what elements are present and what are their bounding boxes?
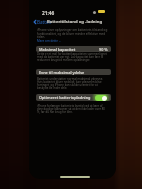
staticText: Optimeret batteriopladning	[39, 95, 91, 100]
button[interactable]: Evne til maksimal ydelse	[36, 69, 111, 75]
staticText: 21:46	[42, 10, 55, 17]
staticText: iPhone viser oplysninger om batteriets t…	[37, 28, 108, 39]
staticText: Dette er et mål for batterikapaciteten s…	[37, 52, 107, 62]
button[interactable]: Batteri	[33, 18, 53, 26]
button[interactable]: Optimeret batteriopladning	[36, 94, 111, 101]
button[interactable]: Mere om dette ...	[37, 39, 62, 43]
staticText: iPhone forlænger batteriets levetid ved …	[37, 104, 107, 114]
staticText: Evne til maksimal ydelse	[39, 70, 85, 75]
staticText: Maksimal kapacitet	[39, 47, 76, 52]
button[interactable]: Maksimal kapacitet	[36, 46, 111, 52]
other: Optimeret batteriopladning, slået til	[94, 94, 108, 101]
staticText: 90 %	[99, 47, 108, 52]
staticText: Batteriet understøtter normal maksimal y…	[37, 77, 107, 90]
staticText: Batteritilstand og -ladning	[47, 19, 103, 25]
staticText: Batteri	[37, 19, 52, 25]
